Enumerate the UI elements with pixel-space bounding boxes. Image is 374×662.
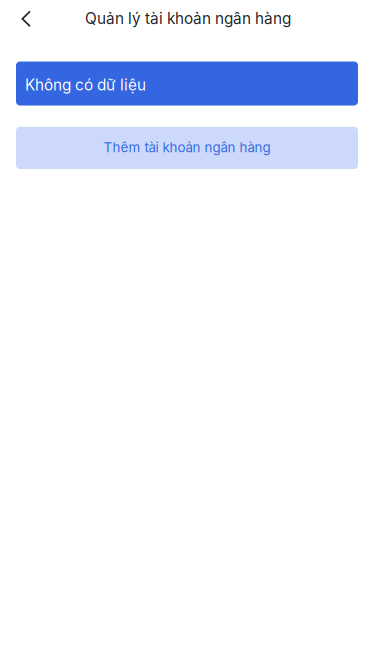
staticText: Quản lý tài khoản ngân hàng	[85, 9, 291, 28]
button[interactable]: Không có dữ liệu	[16, 61, 358, 105]
button[interactable]: Thêm tài khoản ngân hàng	[16, 127, 358, 169]
staticText: Không có dữ liệu	[25, 76, 146, 94]
staticText: Thêm tài khoản ngân hàng	[103, 139, 270, 155]
button[interactable]: Back	[0, 0, 44, 37]
